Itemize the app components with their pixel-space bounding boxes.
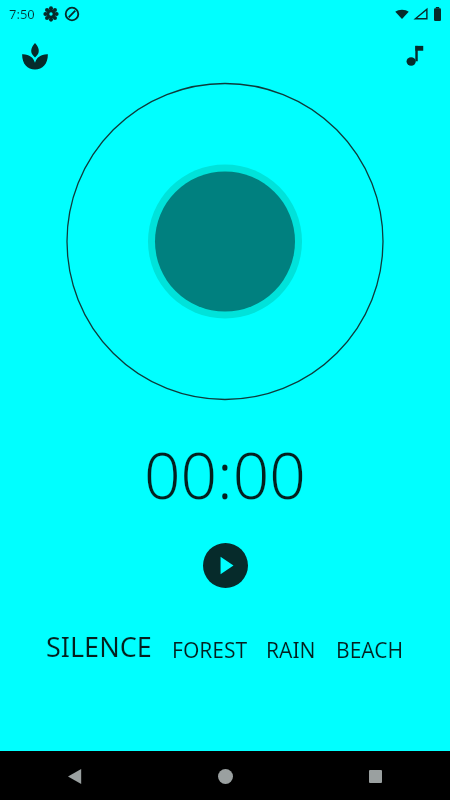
button[interactable]: SILENCE bbox=[43, 624, 155, 669]
staticText: 7:50 bbox=[9, 5, 35, 23]
button[interactable]: BEACH bbox=[333, 632, 407, 669]
button[interactable]: Home bbox=[201, 752, 249, 800]
button[interactable]: Breathing circle bbox=[0, 84, 450, 420]
button[interactable]: Play bbox=[203, 543, 248, 588]
button[interactable]: Meditation bbox=[13, 34, 57, 78]
staticText: 00:00 bbox=[144, 431, 306, 518]
button[interactable]: FOREST bbox=[169, 632, 251, 669]
staticText: BEACH bbox=[336, 636, 404, 665]
button[interactable]: RAIN bbox=[263, 632, 319, 669]
button[interactable]: Recent apps bbox=[351, 752, 399, 800]
staticText: FOREST bbox=[172, 636, 248, 665]
staticText: RAIN bbox=[266, 636, 316, 665]
staticText: SILENCE bbox=[46, 628, 152, 665]
button[interactable]: Sounds bbox=[392, 34, 436, 78]
button[interactable]: Back bbox=[51, 752, 99, 800]
